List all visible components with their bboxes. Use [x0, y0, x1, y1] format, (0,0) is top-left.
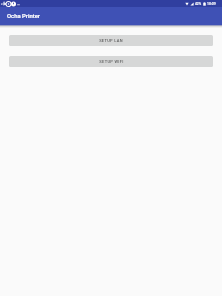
staticText: Ocha Printer: [7, 13, 40, 20]
staticText: 18:09: [207, 2, 216, 6]
staticText: SETUP LAN: [99, 38, 123, 43]
staticText: 42%: [195, 2, 202, 6]
button[interactable]: SETUP LAN: [9, 35, 213, 46]
staticText: SETUP WIFI: [99, 59, 124, 64]
button[interactable]: SETUP WIFI: [9, 56, 213, 67]
